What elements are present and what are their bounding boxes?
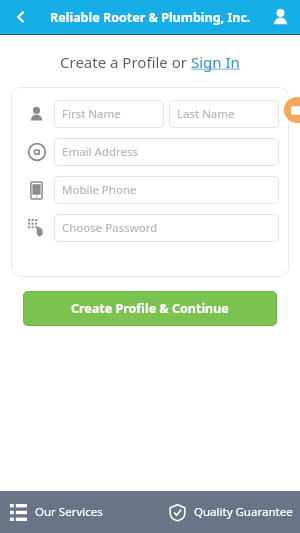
button[interactable]: Quality Guarantee [150, 491, 300, 533]
staticText: Reliable Rooter & Plumbing, Inc. [50, 9, 251, 26]
staticText: Quality Guarantee [194, 504, 293, 520]
staticText: Create a Profile or [60, 52, 191, 72]
staticText: Email Address [62, 144, 139, 160]
button[interactable]: Email Address [54, 138, 279, 166]
button[interactable]: Mobile Phone [54, 176, 279, 204]
staticText: Mobile Phone [62, 182, 137, 198]
staticText: First Name [62, 106, 121, 122]
staticText: Sign In [191, 52, 240, 72]
staticText: Last Name [177, 106, 235, 122]
button[interactable]: Account [264, 1, 296, 33]
button[interactable]: Our Services [0, 491, 150, 533]
button[interactable]: Contact [284, 97, 300, 123]
staticText: Our Services [35, 504, 103, 520]
button[interactable]: Last Name [169, 100, 279, 128]
button[interactable]: Create Profile & Continue [23, 291, 277, 326]
staticText: Choose Password [62, 220, 158, 236]
button[interactable]: Choose Password [54, 214, 279, 242]
staticText: Create Profile & Continue [71, 300, 229, 317]
button[interactable]: Back [4, 0, 38, 34]
button[interactable]: Sign In [191, 52, 240, 72]
button[interactable]: First Name [54, 100, 164, 128]
